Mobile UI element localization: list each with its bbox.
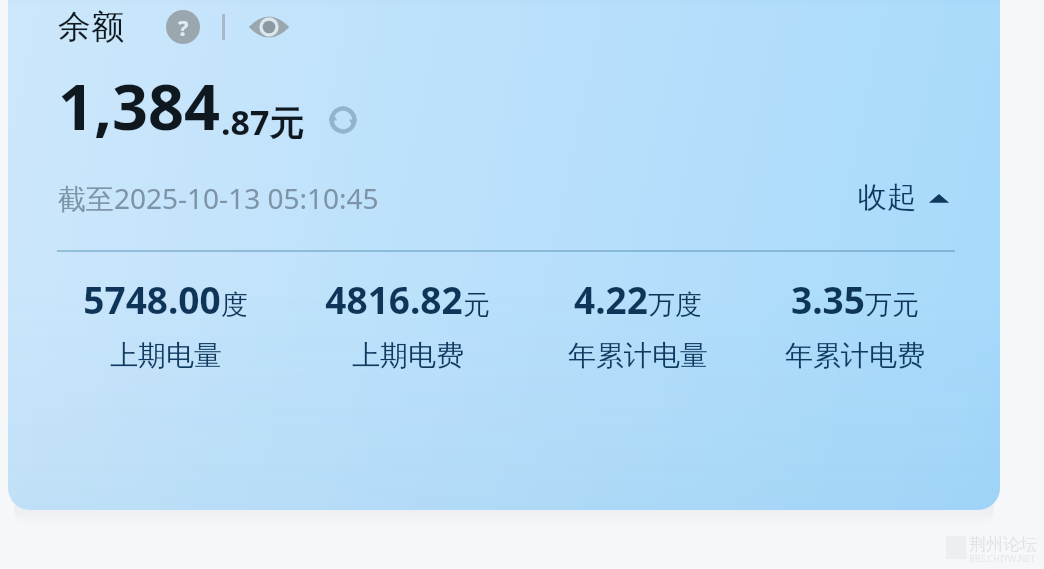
button[interactable]: 刷新 bbox=[324, 101, 362, 139]
staticText: 年累计电量 bbox=[568, 338, 708, 373]
staticText: 收起 bbox=[858, 179, 916, 216]
staticText: 上期电量 bbox=[110, 338, 222, 373]
staticText: ? bbox=[178, 12, 189, 42]
button[interactable]: 5748.00 bbox=[81, 274, 250, 373]
staticText: 荆州论坛 bbox=[969, 534, 1037, 555]
staticText: 截至2025-10-13 05:10:45 bbox=[58, 179, 379, 217]
button[interactable]: 余额 bbox=[8, 0, 1000, 510]
button[interactable]: 帮助 bbox=[166, 10, 200, 44]
staticText: .87元 bbox=[221, 99, 304, 145]
button[interactable]: 显示或隐藏余额 bbox=[247, 10, 291, 44]
staticText: BBS.CHIYW.NET bbox=[969, 552, 1036, 564]
staticText: 万元 bbox=[865, 288, 919, 322]
button[interactable]: 4816.82 bbox=[323, 274, 492, 373]
staticText: 3.35 bbox=[791, 274, 865, 324]
staticText: 度 bbox=[221, 288, 248, 322]
button[interactable]: 收起 bbox=[854, 175, 954, 220]
staticText: 1,384 bbox=[58, 63, 221, 149]
staticText: 5748.00 bbox=[83, 274, 221, 324]
staticText: 万度 bbox=[648, 288, 702, 322]
staticText: 4.22 bbox=[574, 274, 648, 324]
staticText: 上期电费 bbox=[352, 338, 464, 373]
button[interactable]: 3.35 bbox=[783, 274, 927, 373]
staticText: 4816.82 bbox=[325, 274, 463, 324]
staticText: 年累计电费 bbox=[785, 338, 925, 373]
staticText: 元 bbox=[463, 288, 490, 322]
staticText: 余额 bbox=[58, 6, 124, 48]
button[interactable]: 4.22 bbox=[566, 274, 710, 373]
